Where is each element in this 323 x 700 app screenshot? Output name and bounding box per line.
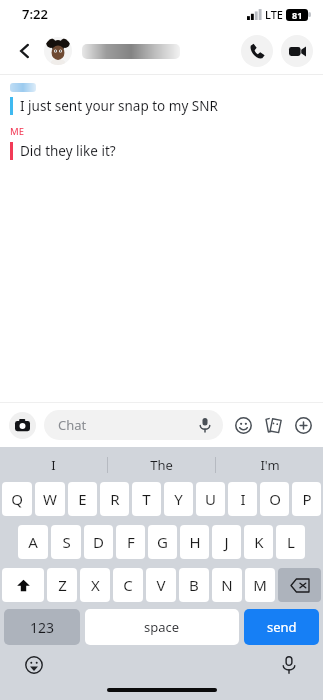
staticText: A: [28, 532, 38, 552]
staticText: G: [157, 532, 168, 552]
button[interactable]: B: [179, 568, 209, 602]
staticText: H: [189, 532, 201, 552]
staticText: Q: [11, 489, 23, 509]
button[interactable]: Camera: [9, 412, 36, 439]
button[interactable]: L: [276, 525, 305, 559]
button[interactable]: W: [35, 482, 65, 516]
button[interactable]: J: [212, 525, 241, 559]
button[interactable]: E: [68, 482, 97, 516]
button[interactable]: V: [146, 568, 176, 602]
staticText: D: [93, 532, 104, 552]
button[interactable]: M: [245, 568, 275, 602]
staticText: J: [224, 532, 229, 552]
button[interactable]: Voice input: [277, 653, 301, 677]
button[interactable]: A: [18, 525, 48, 559]
button[interactable]: Z: [47, 568, 77, 602]
button[interactable]: Y: [164, 482, 193, 516]
button[interactable]: P: [292, 482, 321, 516]
button[interactable]: Call: [241, 35, 273, 67]
button[interactable]: O: [260, 482, 289, 516]
button[interactable]: N: [212, 568, 242, 602]
staticText: The: [150, 456, 173, 474]
staticText: X: [91, 575, 100, 595]
button[interactable]: send: [244, 609, 319, 645]
staticText: W: [43, 489, 57, 509]
staticText: C: [123, 575, 133, 595]
button[interactable]: D: [84, 525, 113, 559]
button[interactable]: Profile: [44, 37, 72, 65]
button[interactable]: Did they like it?: [0, 142, 323, 160]
button[interactable]: Stickers: [232, 414, 254, 436]
staticText: K: [254, 532, 264, 552]
staticText: E: [78, 489, 87, 509]
staticText: S: [62, 532, 71, 552]
button[interactable]: Shift: [2, 568, 44, 602]
button[interactable]: Video call: [281, 35, 313, 67]
staticText: M: [253, 575, 267, 595]
staticText: 7:22: [22, 5, 48, 23]
staticText: send: [267, 618, 297, 636]
staticText: 123: [30, 618, 55, 637]
staticText: Did they like it?: [20, 142, 116, 160]
button[interactable]: R: [100, 482, 129, 516]
staticText: R: [110, 489, 120, 509]
staticText: N: [221, 575, 233, 595]
button[interactable]: G: [148, 525, 177, 559]
button[interactable]: H: [180, 525, 209, 559]
button[interactable]: [82, 44, 180, 59]
staticText: Z: [58, 575, 67, 595]
staticText: I: [51, 456, 56, 474]
button[interactable]: Snaps: [262, 414, 284, 436]
staticText: O: [269, 489, 281, 509]
staticText: T: [142, 489, 151, 509]
button[interactable]: X: [80, 568, 110, 602]
button[interactable]: I: [0, 447, 107, 482]
button[interactable]: Q: [2, 482, 32, 516]
button[interactable]: Emoji: [22, 653, 46, 677]
button[interactable]: F: [116, 525, 145, 559]
button[interactable]: K: [244, 525, 273, 559]
staticText: V: [156, 575, 166, 595]
button[interactable]: Chat: [44, 410, 223, 440]
button[interactable]: U: [196, 482, 225, 516]
button[interactable]: I: [228, 482, 257, 516]
staticText: U: [205, 489, 216, 509]
staticText: P: [302, 489, 312, 509]
button[interactable]: space: [85, 609, 239, 645]
button[interactable]: The: [108, 447, 215, 482]
staticText: I: [240, 489, 246, 509]
staticText: space: [144, 618, 180, 636]
button[interactable]: More: [292, 414, 314, 436]
button[interactable]: C: [113, 568, 143, 602]
button[interactable]: I just sent your snap to my SNR: [0, 97, 323, 115]
staticText: L: [287, 532, 295, 552]
staticText: I'm: [260, 456, 280, 474]
button[interactable]: Back: [10, 36, 40, 66]
staticText: Y: [174, 489, 183, 509]
button[interactable]: I'm: [216, 447, 323, 482]
staticText: I just sent your snap to my SNR: [20, 97, 218, 115]
staticText: 81: [292, 9, 303, 21]
staticText: B: [189, 575, 199, 595]
button[interactable]: 123: [4, 609, 80, 645]
button[interactable]: T: [132, 482, 161, 516]
button[interactable]: S: [51, 525, 81, 559]
staticText: F: [127, 532, 135, 552]
staticText: ME: [10, 125, 25, 138]
staticText: LTE: [265, 7, 283, 22]
button[interactable]: Backspace: [278, 568, 321, 602]
staticText: Chat: [58, 416, 87, 434]
